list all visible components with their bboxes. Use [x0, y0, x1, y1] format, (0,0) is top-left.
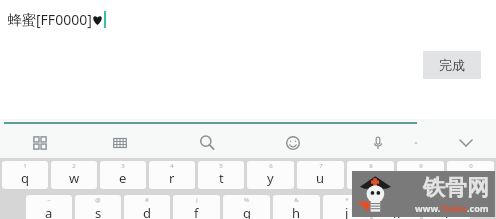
- staticText: s: [95, 204, 102, 219]
- staticText: r: [169, 169, 175, 187]
- staticText: g: [243, 204, 251, 219]
- staticText: h: [292, 204, 301, 219]
- button[interactable]: ~: [26, 195, 72, 219]
- staticText: .com: [467, 202, 489, 214]
- staticText: e: [119, 169, 127, 187]
- button[interactable]: 7: [297, 161, 344, 189]
- button[interactable]: toolbar icon: [105, 128, 135, 158]
- button[interactable]: 0: [447, 161, 494, 189]
- button[interactable]: *: [323, 195, 370, 219]
- staticText: 完成: [439, 57, 465, 73]
- staticText: 8: [369, 162, 373, 170]
- staticText: www.: [415, 202, 441, 214]
- staticText: TieGu: [441, 202, 467, 214]
- button[interactable]: toolbar icon: [192, 128, 222, 158]
- staticText: @: [95, 196, 101, 204]
- button[interactable]: toolbar icon: [401, 128, 431, 158]
- staticText: *: [345, 196, 349, 204]
- staticText: 4: [170, 162, 174, 170]
- button[interactable]: (: [373, 195, 420, 219]
- staticText: q: [21, 169, 29, 187]
- button[interactable]: toolbar icon: [363, 128, 393, 158]
- staticText: p: [467, 169, 475, 187]
- staticText: 2: [72, 162, 76, 170]
- button[interactable]: 完成: [423, 51, 481, 79]
- button[interactable]: ): [423, 195, 470, 219]
- button[interactable]: 4: [149, 161, 195, 189]
- staticText: d: [143, 204, 151, 219]
- button[interactable]: @: [75, 195, 121, 219]
- staticText: ~: [47, 196, 51, 204]
- staticText: 1: [23, 162, 27, 170]
- staticText: |: [195, 196, 199, 204]
- button[interactable]: 蜂蜜[FF0000]: [8, 10, 106, 29]
- staticText: 9: [419, 162, 423, 170]
- staticText: k: [393, 204, 400, 219]
- staticText: 蜂蜜[FF0000]: [8, 10, 92, 29]
- staticText: 7: [319, 162, 323, 170]
- button[interactable]: 9: [397, 161, 444, 189]
- button[interactable]: 3: [100, 161, 146, 189]
- button[interactable]: toolbar icon: [278, 128, 308, 158]
- staticText: t: [219, 169, 224, 187]
- button[interactable]: 5: [198, 161, 244, 189]
- staticText: y: [267, 169, 274, 187]
- staticText: 铁骨网: [423, 174, 489, 202]
- staticText: w: [69, 169, 80, 187]
- staticText: 3: [121, 162, 125, 170]
- staticText: i: [369, 169, 373, 187]
- staticText: u: [316, 169, 325, 187]
- staticText: 6: [269, 162, 273, 170]
- button[interactable]: |: [173, 195, 220, 219]
- staticText: 0: [469, 162, 473, 170]
- staticText: 5: [219, 162, 223, 170]
- button[interactable]: 8: [347, 161, 394, 189]
- button[interactable]: toolbar icon: [25, 128, 55, 158]
- staticText: l: [445, 204, 449, 219]
- staticText: #: [145, 196, 149, 204]
- button[interactable]: 6: [247, 161, 294, 189]
- button[interactable]: 2: [51, 161, 97, 189]
- button[interactable]: #: [124, 195, 170, 219]
- button[interactable]: toolbar icon: [451, 128, 481, 158]
- button[interactable]: %: [223, 195, 270, 219]
- button[interactable]: 1: [2, 161, 48, 189]
- staticText: %: [244, 196, 249, 204]
- staticText: a: [45, 204, 53, 219]
- button[interactable]: &: [273, 195, 320, 219]
- staticText: o: [417, 169, 425, 187]
- staticText: &: [294, 196, 299, 204]
- staticText: f: [194, 204, 199, 219]
- staticText: j: [345, 204, 349, 219]
